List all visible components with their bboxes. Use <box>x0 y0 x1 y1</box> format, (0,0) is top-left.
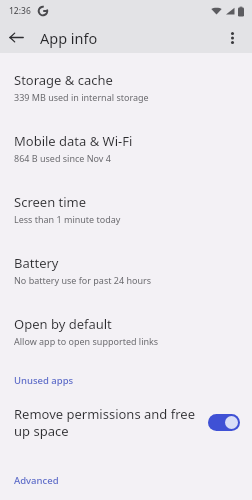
staticText: 864 B used since Nov 4 <box>14 152 111 164</box>
staticText: 339 MB used in internal storage <box>14 91 149 103</box>
staticText: Open by default <box>14 315 112 333</box>
staticText: 12:36 <box>9 5 31 17</box>
button[interactable]: Advanced <box>0 468 252 493</box>
button[interactable]: Mobile data & Wi-Fi <box>0 123 252 173</box>
button[interactable]: Back <box>0 22 32 53</box>
staticText: Advanced <box>14 474 59 487</box>
staticText: Remove permissions and free up space <box>14 405 200 440</box>
button[interactable]: Unused apps <box>0 368 252 393</box>
staticText: App info <box>40 28 98 48</box>
button[interactable]: Screen time <box>0 184 252 234</box>
staticText: Battery <box>14 254 59 272</box>
staticText: Storage & cache <box>14 71 113 89</box>
staticText: No battery use for past 24 hours <box>14 274 152 286</box>
staticText: Screen time <box>14 193 87 211</box>
button[interactable]: Remove permissions toggle <box>208 414 240 431</box>
button[interactable]: Storage & cache <box>0 62 252 112</box>
button[interactable]: More options <box>216 22 248 53</box>
staticText: Allow app to open supported links <box>14 335 159 347</box>
staticText: Less than 1 minute today <box>14 213 121 225</box>
button[interactable]: Battery <box>0 245 252 295</box>
button[interactable]: Remove permissions and free up space <box>0 399 252 446</box>
staticText: Unused apps <box>14 374 74 387</box>
button[interactable]: Open by default <box>0 306 252 356</box>
staticText: Mobile data & Wi-Fi <box>14 132 133 150</box>
